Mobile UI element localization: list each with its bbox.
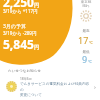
staticText: 最低: [74, 50, 98, 54]
staticText: 5,845: [3, 36, 34, 52]
staticText: ›: [94, 83, 96, 91]
staticText: たいせつなお知らせ: [8, 69, 42, 74]
button[interactable]: Weather: [74, 0, 98, 14]
staticText: 円: [34, 2, 39, 8]
staticText: 9: [82, 53, 88, 65]
staticText: 3/19から +117円: [3, 8, 38, 14]
staticText: 円: [34, 44, 39, 50]
staticText: 3月の予算: [3, 23, 26, 30]
staticText: でんきサービスの電気料金および特典内容の 変更について: [20, 82, 92, 97]
staticText: 18年6月: [20, 77, 32, 81]
staticText: 17: [78, 34, 89, 46]
staticText: 晴れ: [74, 4, 98, 8]
staticText: ℃: [88, 59, 92, 64]
staticText: 2,250: [3, 0, 34, 10]
staticText: ℃: [89, 40, 93, 45]
staticText: 最高: [74, 29, 98, 33]
staticText: 3/19から -289円: [3, 30, 37, 36]
button[interactable]: 18年6月: [0, 76, 100, 97]
staticText: 東京都: [74, 0, 98, 4]
